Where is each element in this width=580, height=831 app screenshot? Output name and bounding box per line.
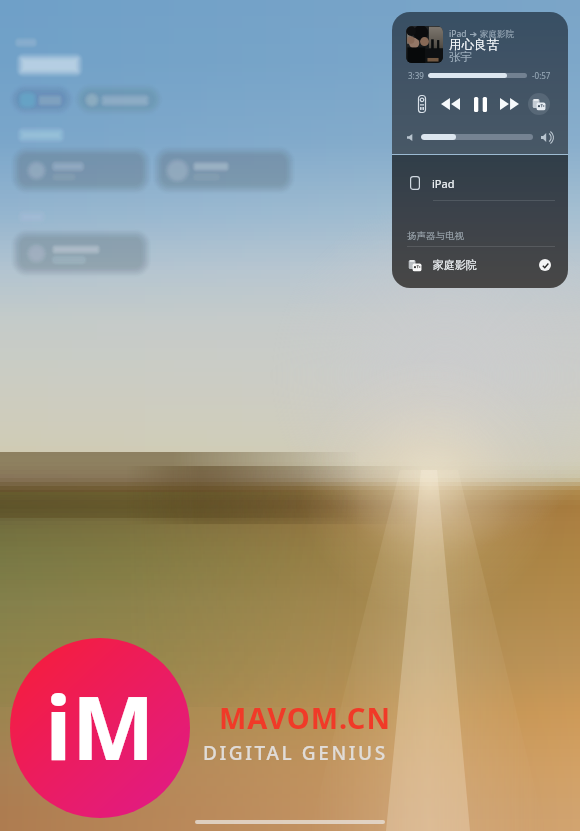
staticText: 张宇 — [449, 50, 472, 64]
staticText: 用心良苦 — [449, 37, 499, 53]
button[interactable]: Rewind — [437, 88, 463, 120]
staticText: MAVOM.CN — [219, 698, 391, 737]
staticText: -0:57 — [532, 70, 551, 81]
staticText: iPad — [432, 176, 455, 191]
staticText: 扬声器与电视 — [407, 230, 464, 242]
staticText: 家庭影院 — [433, 258, 477, 272]
staticText: 3:39 — [408, 70, 424, 81]
button[interactable]: Remote — [409, 88, 434, 120]
staticText: iPad — [449, 28, 467, 40]
button[interactable]: iPad — [392, 169, 568, 197]
staticText: iM — [40, 666, 160, 786]
staticText: 家庭影院 — [480, 29, 514, 40]
button[interactable]: Fast forward — [496, 88, 523, 120]
button[interactable]: 家庭影院 — [392, 251, 568, 279]
staticText: DIGITAL GENIUS — [203, 740, 388, 766]
button[interactable]: AirPlay — [528, 93, 550, 115]
button[interactable]: Pause — [467, 88, 493, 120]
